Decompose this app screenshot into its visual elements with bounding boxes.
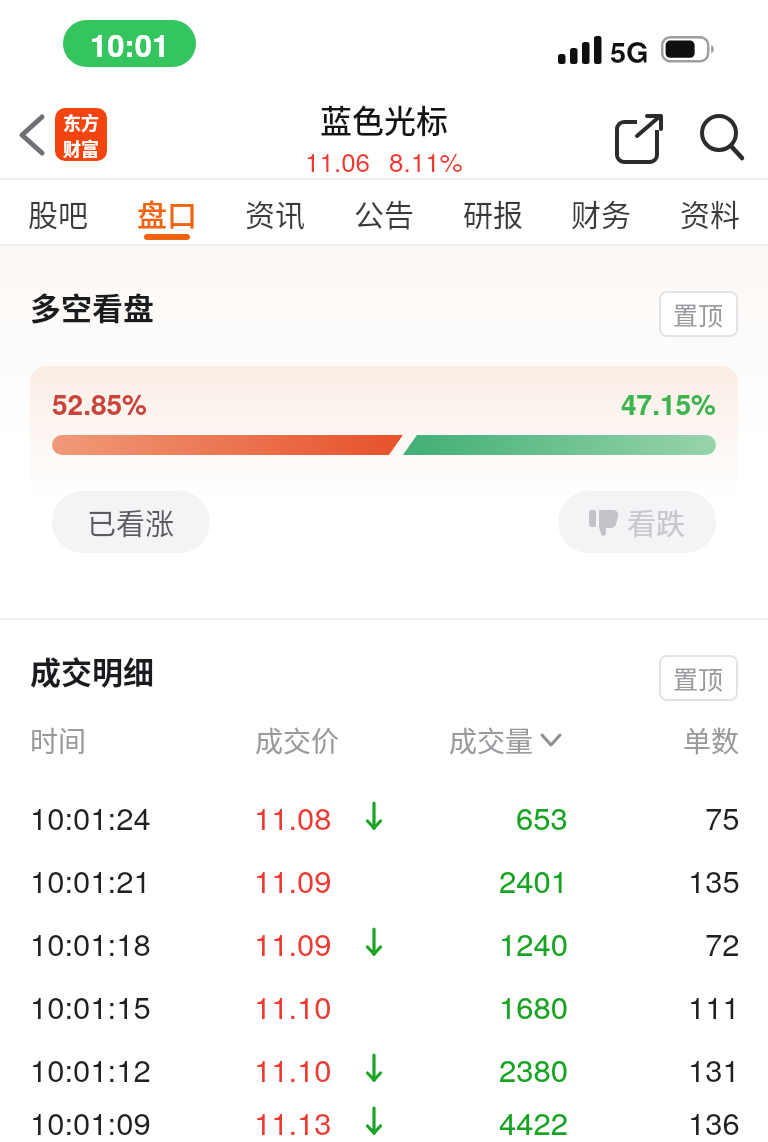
button[interactable]: 公告 [354,180,414,244]
staticText: 11.09 [254,920,332,964]
staticText: 2380 [499,1046,568,1090]
button[interactable]: 财务 [571,180,631,244]
staticText: 置顶 [673,660,724,696]
staticText: 72 [705,920,740,964]
staticText: 10:01:21 [30,857,151,901]
staticText: 10:01 [90,22,170,66]
staticText: 75 [705,794,740,838]
staticText: 东方 [63,109,99,135]
staticText: 47.15% [621,383,716,423]
staticText: 看跌 [627,501,686,543]
staticText: 单数 [683,720,740,760]
button[interactable]: 10:01 [63,20,196,67]
staticText: 已看涨 [87,501,175,543]
staticText: 股吧 [28,191,88,234]
staticText: 10:01:15 [30,983,151,1027]
staticText: 财务 [571,191,631,234]
button[interactable]: 已看涨 [52,491,210,553]
button[interactable] [607,110,671,170]
staticText: 10:01:24 [30,794,151,838]
staticText: 成交明细 [30,648,154,693]
staticText: 盘口 [137,191,197,234]
staticText: 11.10 [254,983,332,1027]
staticText: 4422 [499,1099,568,1142]
button[interactable]: 资讯 [245,180,305,244]
staticText: 财富 [63,135,99,161]
staticText: 136 [688,1099,740,1142]
button[interactable]: 置顶 [659,655,738,701]
staticText: 131 [688,1046,740,1090]
button[interactable] [0,90,56,178]
button[interactable]: 置顶 [659,291,738,337]
staticText: 多空看盘 [30,284,154,329]
button[interactable]: 10:01:18 [30,910,740,973]
staticText: 111 [688,983,740,1027]
staticText: 时间 [30,720,87,760]
staticText: 公告 [354,191,414,234]
staticText: 10:01:18 [30,920,151,964]
button[interactable]: 10:01:12 [30,1036,740,1099]
staticText: 资讯 [245,191,305,234]
button[interactable]: 盘口 [137,180,197,244]
staticText: 成交量 [449,720,534,760]
staticText: 8.11% [389,142,463,178]
staticText: 11.09 [254,857,332,901]
staticText: 2401 [499,857,568,901]
staticText: 资料 [680,191,740,234]
button[interactable]: 10:01:21 [30,847,740,910]
staticText: 10:01:09 [30,1099,151,1142]
staticText: 52.85% [52,383,147,423]
button[interactable]: 10:01:15 [30,973,740,1036]
button[interactable]: 资料 [680,180,740,244]
staticText: 11.06 [305,142,371,178]
staticText: 研报 [463,191,523,234]
staticText: 135 [688,857,740,901]
button[interactable]: 10:01:09 [30,1099,740,1142]
staticText: 置顶 [673,296,724,332]
staticText: 10:01:12 [30,1046,151,1090]
staticText: 5G [610,30,649,72]
staticText: 蓝色光标 [320,96,449,142]
staticText: 11.13 [254,1099,332,1142]
button[interactable]: 看跌 [558,491,716,553]
staticText: 1240 [499,920,568,964]
button[interactable] [688,110,754,170]
button[interactable]: 股吧 [28,180,88,244]
staticText: 11.08 [254,794,332,838]
button[interactable]: 东方 [55,108,107,161]
button[interactable]: 研报 [463,180,523,244]
staticText: 653 [516,794,568,838]
staticText: 成交价 [255,720,340,760]
staticText: 11.10 [254,1046,332,1090]
button[interactable]: 10:01:24 [30,784,740,847]
staticText: 1680 [499,983,568,1027]
